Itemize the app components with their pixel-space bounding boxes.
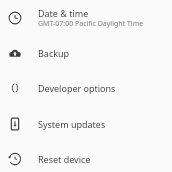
staticText: Reset device <box>38 153 91 165</box>
other: Backup <box>6 44 24 62</box>
button[interactable]: Backup <box>0 38 172 67</box>
staticText: System updates <box>38 118 106 130</box>
other: Developer options <box>6 79 24 97</box>
staticText: Backup <box>38 47 70 59</box>
staticText: GMT-07:00 Pacific Daylight Time <box>38 19 144 29</box>
other: System updates <box>6 115 24 133</box>
staticText: Date & time <box>38 7 89 19</box>
button[interactable]: Reset device <box>0 145 172 172</box>
button[interactable]: Developer options <box>0 73 172 102</box>
button[interactable]: Date and time <box>0 3 172 32</box>
other: Date and time <box>6 9 24 27</box>
staticText: Developer options <box>38 82 116 94</box>
other: Reset device <box>6 150 24 168</box>
button[interactable]: System updates <box>0 109 172 138</box>
